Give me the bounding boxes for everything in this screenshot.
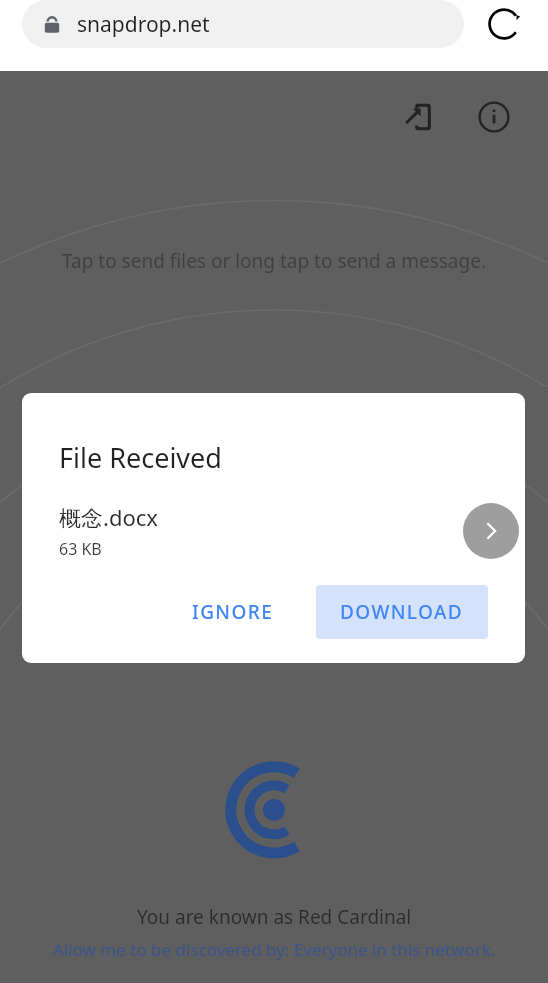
button[interactable]: About Snapdrop [470,93,518,141]
staticText: 概念.docx [59,502,158,532]
button[interactable]: DOWNLOAD [316,585,488,639]
staticText: File Received [59,439,222,476]
button[interactable]: Reload page [482,2,526,46]
button[interactable]: Preview file [463,503,519,559]
staticText: snapdrop.net [77,10,210,39]
button[interactable]: Allow me to be discovered by: Everyone i… [0,938,548,961]
staticText: Tap to send files or long tap to send a … [62,248,487,274]
staticText: You are known as Red Cardinal [137,904,412,930]
staticText: Allow me to be discovered by: Everyone i… [53,938,496,961]
staticText: DOWNLOAD [340,599,464,625]
staticText: 63 KB [59,538,102,560]
staticText: IGNORE [192,599,274,625]
button[interactable]: IGNORE [172,585,294,639]
button[interactable]: Send to device [396,93,444,141]
button[interactable]: snapdrop.net [22,0,464,48]
